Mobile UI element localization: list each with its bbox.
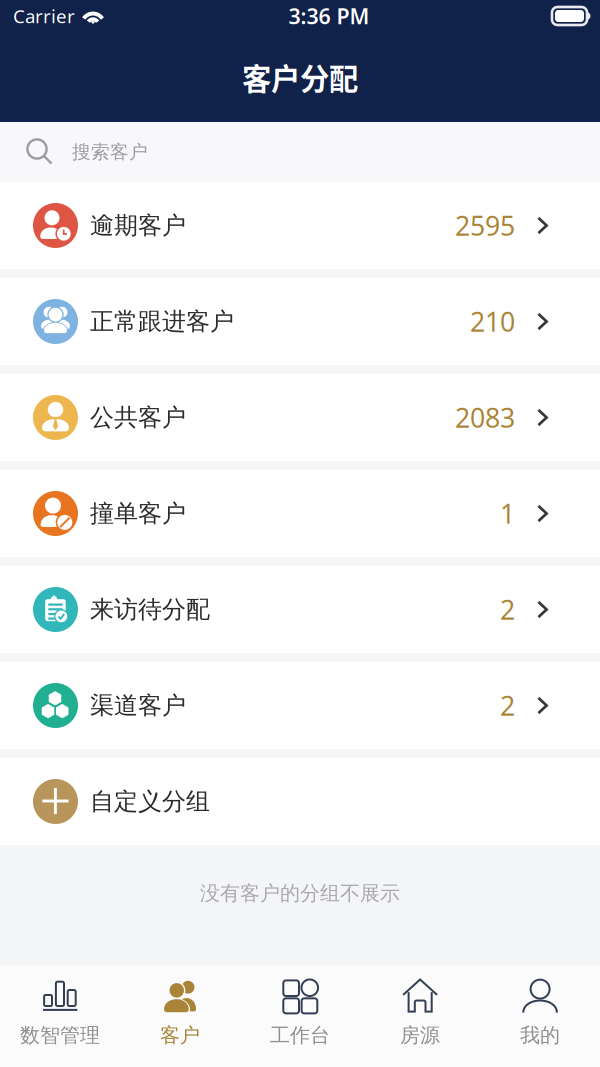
staticText: 客户分配 [242, 56, 358, 98]
button[interactable]: 来访待分配 [0, 566, 600, 653]
button[interactable]: 客户 [120, 965, 240, 1067]
staticText: 房源 [400, 1023, 440, 1048]
button[interactable]: 自定义分组 [0, 758, 600, 845]
staticText: Carrier [13, 4, 75, 28]
staticText: 我的 [520, 1023, 560, 1048]
button[interactable]: 渠道客户 [0, 662, 600, 749]
button[interactable]: 正常跟进客户 [0, 278, 600, 365]
staticText: 自定义分组 [90, 787, 210, 816]
staticText: 搜索客户 [72, 140, 148, 163]
button[interactable]: 撞单客户 [0, 470, 600, 557]
staticText: 2595 [455, 208, 515, 243]
staticText: 渠道客户 [90, 691, 186, 720]
staticText: 逾期客户 [90, 211, 186, 240]
staticText: 数智管理 [20, 1023, 100, 1048]
button[interactable]: 我的 [480, 965, 600, 1067]
staticText: 公共客户 [90, 403, 186, 432]
staticText: 2 [500, 688, 515, 723]
staticText: 210 [470, 304, 515, 339]
button[interactable]: 逾期客户 [0, 182, 600, 269]
staticText: 1 [500, 496, 515, 531]
staticText: 来访待分配 [90, 595, 210, 624]
staticText: 3:36 PM [288, 2, 369, 30]
button[interactable]: 数智管理 [0, 965, 120, 1067]
staticText: 撞单客户 [90, 499, 186, 528]
staticText: 2 [500, 592, 515, 627]
button[interactable]: 房源 [360, 965, 480, 1067]
staticText: 工作台 [270, 1023, 330, 1048]
staticText: 没有客户的分组不展示 [200, 881, 400, 906]
button[interactable]: 工作台 [240, 965, 360, 1067]
staticText: 2083 [455, 400, 515, 435]
staticText: 正常跟进客户 [90, 307, 234, 336]
staticText: 客户 [160, 1023, 200, 1048]
button[interactable]: 公共客户 [0, 374, 600, 461]
